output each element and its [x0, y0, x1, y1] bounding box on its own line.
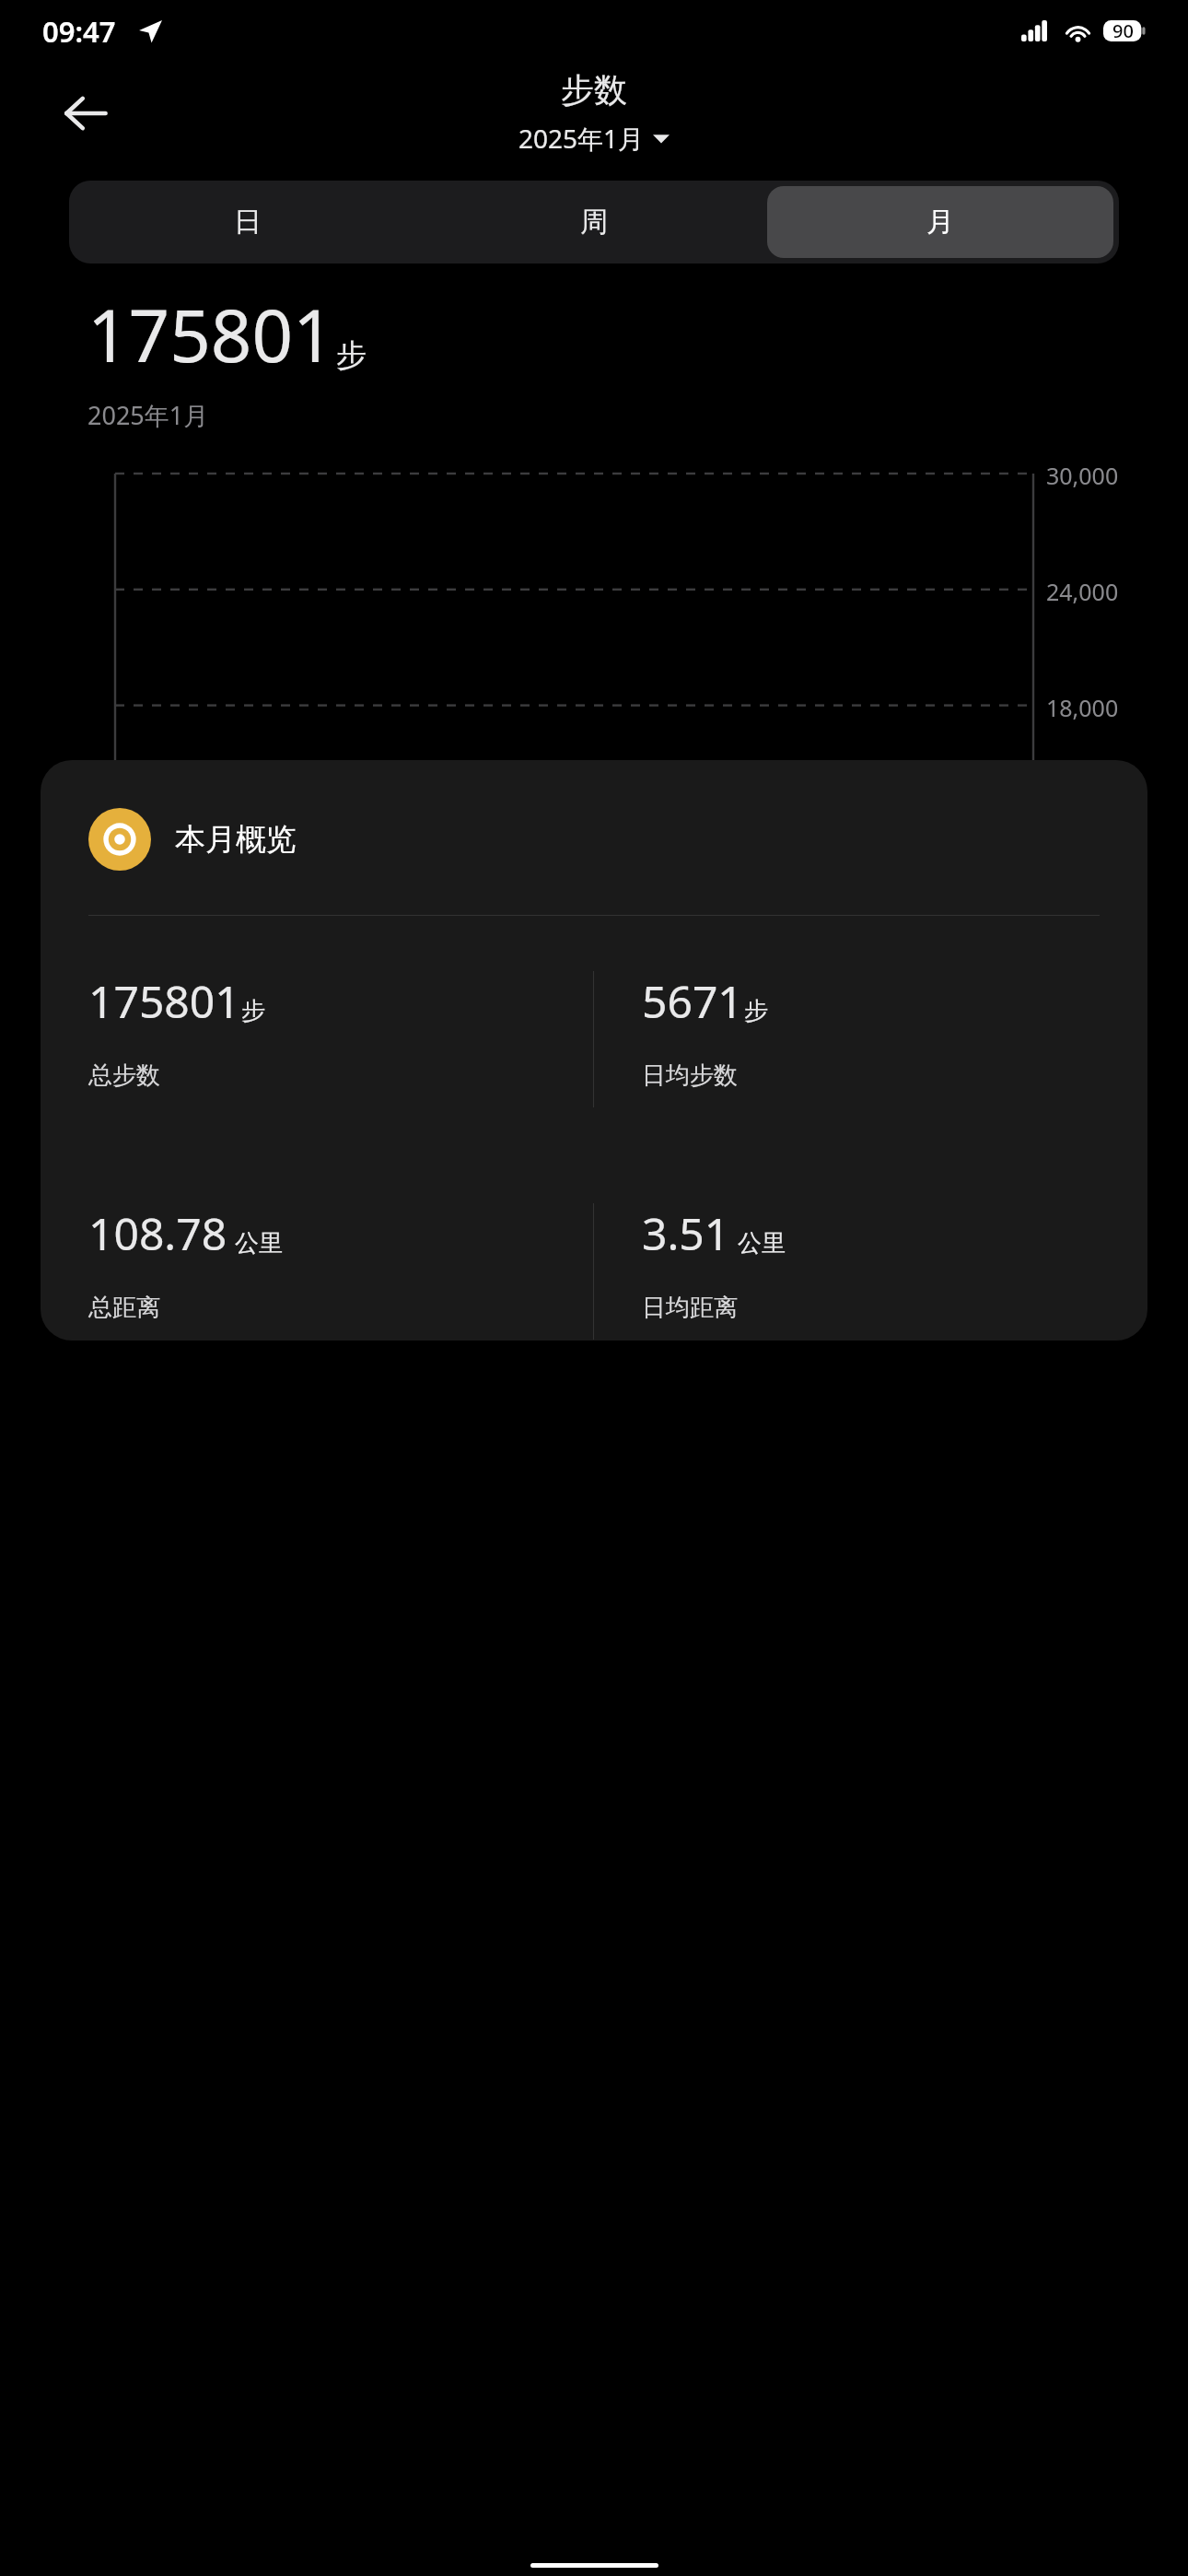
staticText: 1 [117, 1072, 131, 1104]
staticText: 2025年1月 [87, 398, 209, 432]
button[interactable]: 周 [421, 186, 767, 258]
staticText: 本月概览 [175, 820, 297, 859]
button[interactable]: 2025年1月 [513, 119, 675, 158]
staticText: 总步数 [88, 1060, 160, 1091]
staticText: 5671 [642, 971, 743, 1031]
staticText: 公里 [738, 1228, 786, 1259]
staticText: 175801 [87, 286, 334, 383]
button[interactable]: 日 [75, 186, 421, 258]
staticText: 日 [234, 205, 262, 240]
staticText: 175801 [88, 971, 240, 1031]
staticText: 月 [926, 205, 954, 240]
staticText: 步 [241, 996, 265, 1026]
staticText: 日均步数 [642, 1060, 738, 1091]
staticText: 3.51 [642, 1203, 730, 1263]
staticText: 2025年1月 [518, 121, 645, 156]
button[interactable]: 月 [767, 186, 1113, 258]
staticText: 步 [336, 336, 367, 375]
button[interactable]: 返回 [55, 83, 116, 144]
staticText: 90 [1112, 18, 1134, 43]
staticText: 步 [744, 996, 768, 1026]
staticText: 09:47 [42, 12, 116, 51]
staticText: 24,000 [1046, 576, 1119, 607]
staticText: 公里 [235, 1228, 283, 1259]
staticText: 108.78 [88, 1203, 227, 1263]
staticText: 18,000 [1046, 692, 1119, 723]
button[interactable]: 本月概览 [41, 760, 1147, 1341]
staticText: 总距离 [88, 1293, 160, 1323]
staticText: 日均距离 [642, 1293, 738, 1323]
staticText: 周 [580, 205, 608, 240]
staticText: 步数 [561, 69, 627, 111]
staticText: 30,000 [1046, 460, 1119, 491]
